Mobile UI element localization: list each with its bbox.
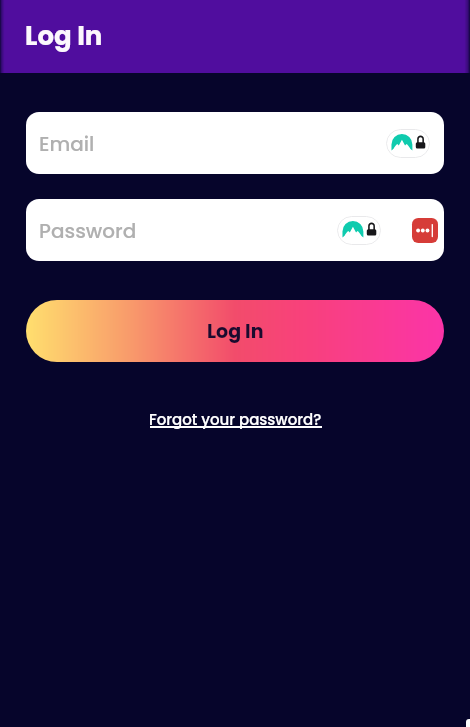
button[interactable]: Log In — [26, 300, 444, 362]
button[interactable]: Autofill with NordPass — [386, 129, 430, 158]
button[interactable]: Autofill with LastPass — [412, 218, 438, 243]
button[interactable]: Autofill with NordPass — [337, 216, 381, 245]
button[interactable]: Email — [26, 112, 444, 174]
staticText: Password — [39, 217, 137, 245]
staticText: Email — [39, 130, 95, 158]
button[interactable]: Password — [26, 199, 444, 261]
staticText: Forgot your password? — [149, 409, 322, 430]
button[interactable]: Forgot your password? — [145, 406, 326, 433]
staticText: Log In — [25, 18, 103, 54]
staticText: Log In — [207, 318, 264, 345]
